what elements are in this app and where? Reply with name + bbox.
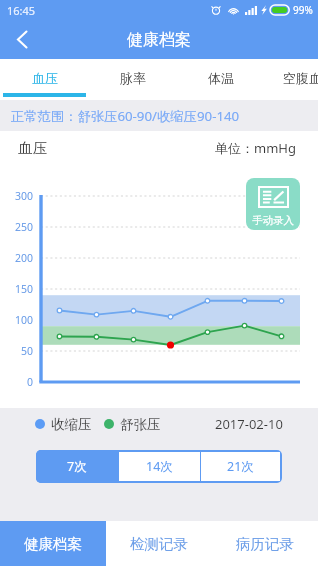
staticText: 手动录入: [252, 214, 294, 227]
staticText: 舒张压: [120, 416, 161, 433]
button[interactable]: 7次: [36, 450, 118, 483]
staticText: 单位：mmHg: [215, 139, 296, 157]
button[interactable]: 病历记录: [212, 521, 318, 566]
staticText: 21次: [227, 458, 254, 475]
button[interactable]: 空腹血糖: [265, 59, 318, 100]
button[interactable]: 21次: [201, 452, 280, 481]
staticText: 检测记录: [130, 535, 188, 553]
staticText: 150: [15, 282, 34, 296]
button[interactable]: 检测记录: [106, 521, 212, 566]
staticText: 2017-02-10: [215, 415, 283, 433]
button[interactable]: Back: [0, 20, 44, 59]
staticText: 体温: [208, 70, 234, 86]
staticText: 血压: [32, 70, 58, 86]
button[interactable]: 健康档案: [0, 521, 106, 566]
staticText: 脉率: [120, 70, 146, 86]
staticText: 收缩压: [51, 416, 92, 433]
staticText: 血压: [18, 139, 47, 157]
staticText: 14次: [146, 458, 173, 475]
button[interactable]: 血压: [1, 59, 89, 100]
staticText: 正常范围：舒张压60-90/收缩压90-140: [11, 107, 240, 125]
staticText: 16:45: [7, 3, 36, 18]
staticText: 健康档案: [24, 535, 82, 553]
staticText: 7次: [67, 458, 87, 475]
staticText: 99%: [293, 3, 313, 17]
button[interactable]: 体温: [177, 59, 265, 100]
button[interactable]: 脉率: [89, 59, 177, 100]
staticText: 100: [15, 313, 34, 327]
staticText: 病历记录: [236, 535, 294, 553]
staticText: 300: [15, 189, 34, 203]
staticText: 健康档案: [127, 30, 191, 50]
staticText: 50: [21, 344, 34, 358]
button[interactable]: 14次: [119, 452, 200, 481]
button[interactable]: 手动录入: [246, 178, 300, 230]
staticText: 200: [15, 251, 34, 265]
staticText: 空腹血糖: [283, 70, 318, 86]
staticText: 0: [27, 375, 34, 389]
staticText: 250: [15, 220, 34, 234]
